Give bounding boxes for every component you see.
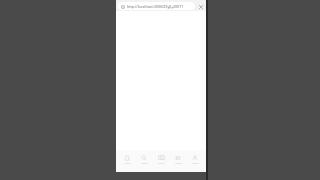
button[interactable]: Search <box>136 150 152 168</box>
button[interactable]: Profile <box>187 150 203 168</box>
button[interactable]: Close tab <box>197 3 204 10</box>
button[interactable]: Site information <box>118 2 195 10</box>
button[interactable]: Site information <box>120 4 125 9</box>
button[interactable]: Scan <box>153 150 169 168</box>
button[interactable]: Home <box>119 150 135 168</box>
button[interactable]: Library <box>170 150 186 168</box>
staticText: http://localhost:3000/ZEyJLj2XKT1 <box>127 4 184 9</box>
